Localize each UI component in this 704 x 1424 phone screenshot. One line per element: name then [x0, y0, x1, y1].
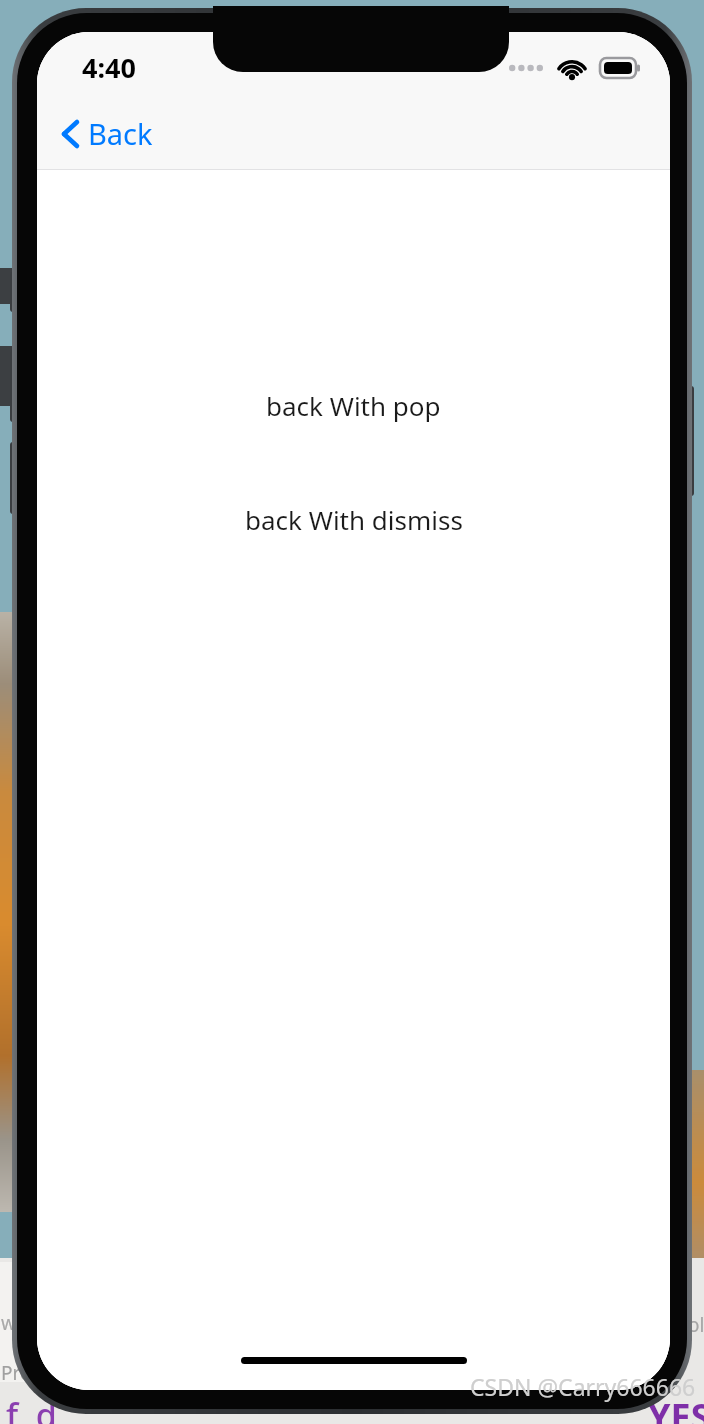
staticText: f d	[6, 1392, 57, 1424]
staticText: Back	[88, 114, 153, 153]
button[interactable]: Back	[53, 108, 161, 159]
staticText: Pro	[1, 1360, 32, 1386]
button[interactable]: back With pop	[248, 378, 459, 433]
staticText: back With pop	[266, 388, 441, 423]
staticText: w	[1, 1310, 16, 1336]
staticText: oll	[688, 1312, 704, 1338]
button[interactable]: back With dismiss	[227, 492, 481, 547]
staticText: YES	[648, 1392, 704, 1424]
staticText: back With dismiss	[245, 502, 463, 537]
staticText: CSDN @Carry666666	[470, 1371, 696, 1402]
staticText: 4:40	[82, 49, 136, 86]
